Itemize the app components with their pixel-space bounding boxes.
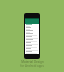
button[interactable] — [25, 45, 39, 48]
button[interactable] — [25, 48, 39, 51]
staticText: for Android apps — [20, 64, 44, 68]
button[interactable] — [25, 42, 39, 45]
button[interactable] — [25, 51, 39, 54]
button[interactable] — [25, 33, 39, 36]
button[interactable] — [25, 39, 39, 42]
button[interactable] — [25, 27, 39, 30]
button[interactable] — [25, 24, 39, 27]
button[interactable] — [25, 30, 39, 33]
button[interactable] — [25, 36, 39, 39]
staticText: Material Design — [21, 60, 44, 64]
